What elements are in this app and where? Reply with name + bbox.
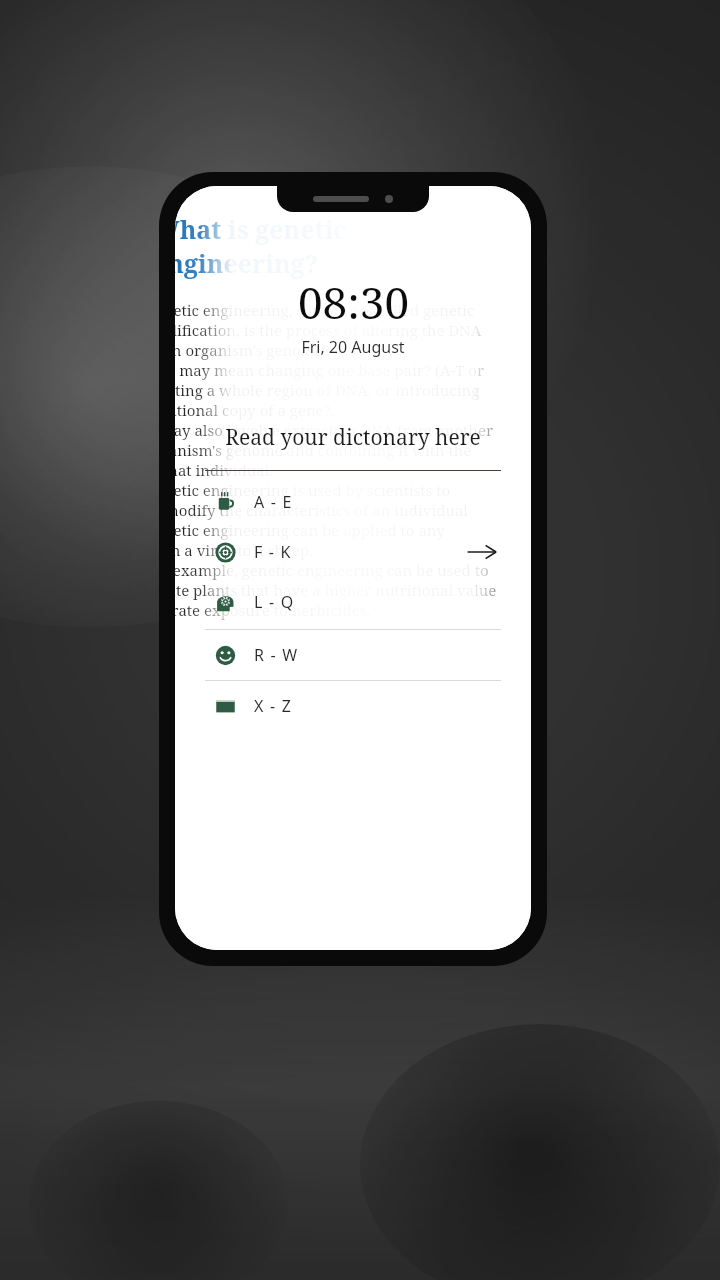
staticText: It may also involve extracting DNA from …: [175, 420, 493, 440]
staticText: Genetic engineering can be applied to an…: [175, 520, 499, 540]
staticText: For example, genetic engineering can be …: [175, 560, 489, 580]
staticText: Genetic engineering is used by scientist…: [175, 480, 499, 500]
staticText: organism's genome and combining it with …: [175, 440, 499, 460]
staticText: from a virus to a sheep.: [175, 540, 313, 560]
staticText: Fri, 20 August: [301, 336, 405, 358]
staticText: L - Q: [254, 591, 295, 613]
staticText: X - Z: [254, 695, 293, 717]
button[interactable]: L - Q: [215, 577, 501, 627]
staticText: 08:30: [298, 272, 409, 332]
staticText: R - W: [254, 644, 299, 666]
staticText: tolerate exposure to herbicides.: [175, 600, 371, 620]
staticText: This may mean changing one base pair? (A…: [175, 360, 485, 380]
staticText: A - E: [254, 491, 293, 513]
staticText: in an organism's genome?: [175, 340, 331, 360]
staticText: deleting a whole region of DNA, or intro…: [175, 380, 499, 400]
button[interactable]: F - K: [215, 527, 501, 577]
staticText: F - K: [254, 541, 292, 563]
staticText: or modify the characteristics of an indi…: [175, 500, 499, 520]
staticText: modification, is the process of altering…: [175, 320, 482, 340]
staticText: What is genetic engineering?: [175, 212, 507, 280]
staticText: additional copy of a gene?.: [175, 400, 335, 420]
button[interactable]: X - Z: [215, 681, 501, 731]
button[interactable]: R - W: [215, 630, 501, 680]
staticText: Read your dictonary here: [205, 423, 501, 452]
button[interactable]: A - E: [215, 477, 501, 527]
staticText: Genetic engineering, sometimes called ge…: [175, 300, 475, 320]
staticText: create plants that have a higher nutriti…: [175, 580, 499, 600]
staticText: of that individual.: [175, 460, 274, 480]
